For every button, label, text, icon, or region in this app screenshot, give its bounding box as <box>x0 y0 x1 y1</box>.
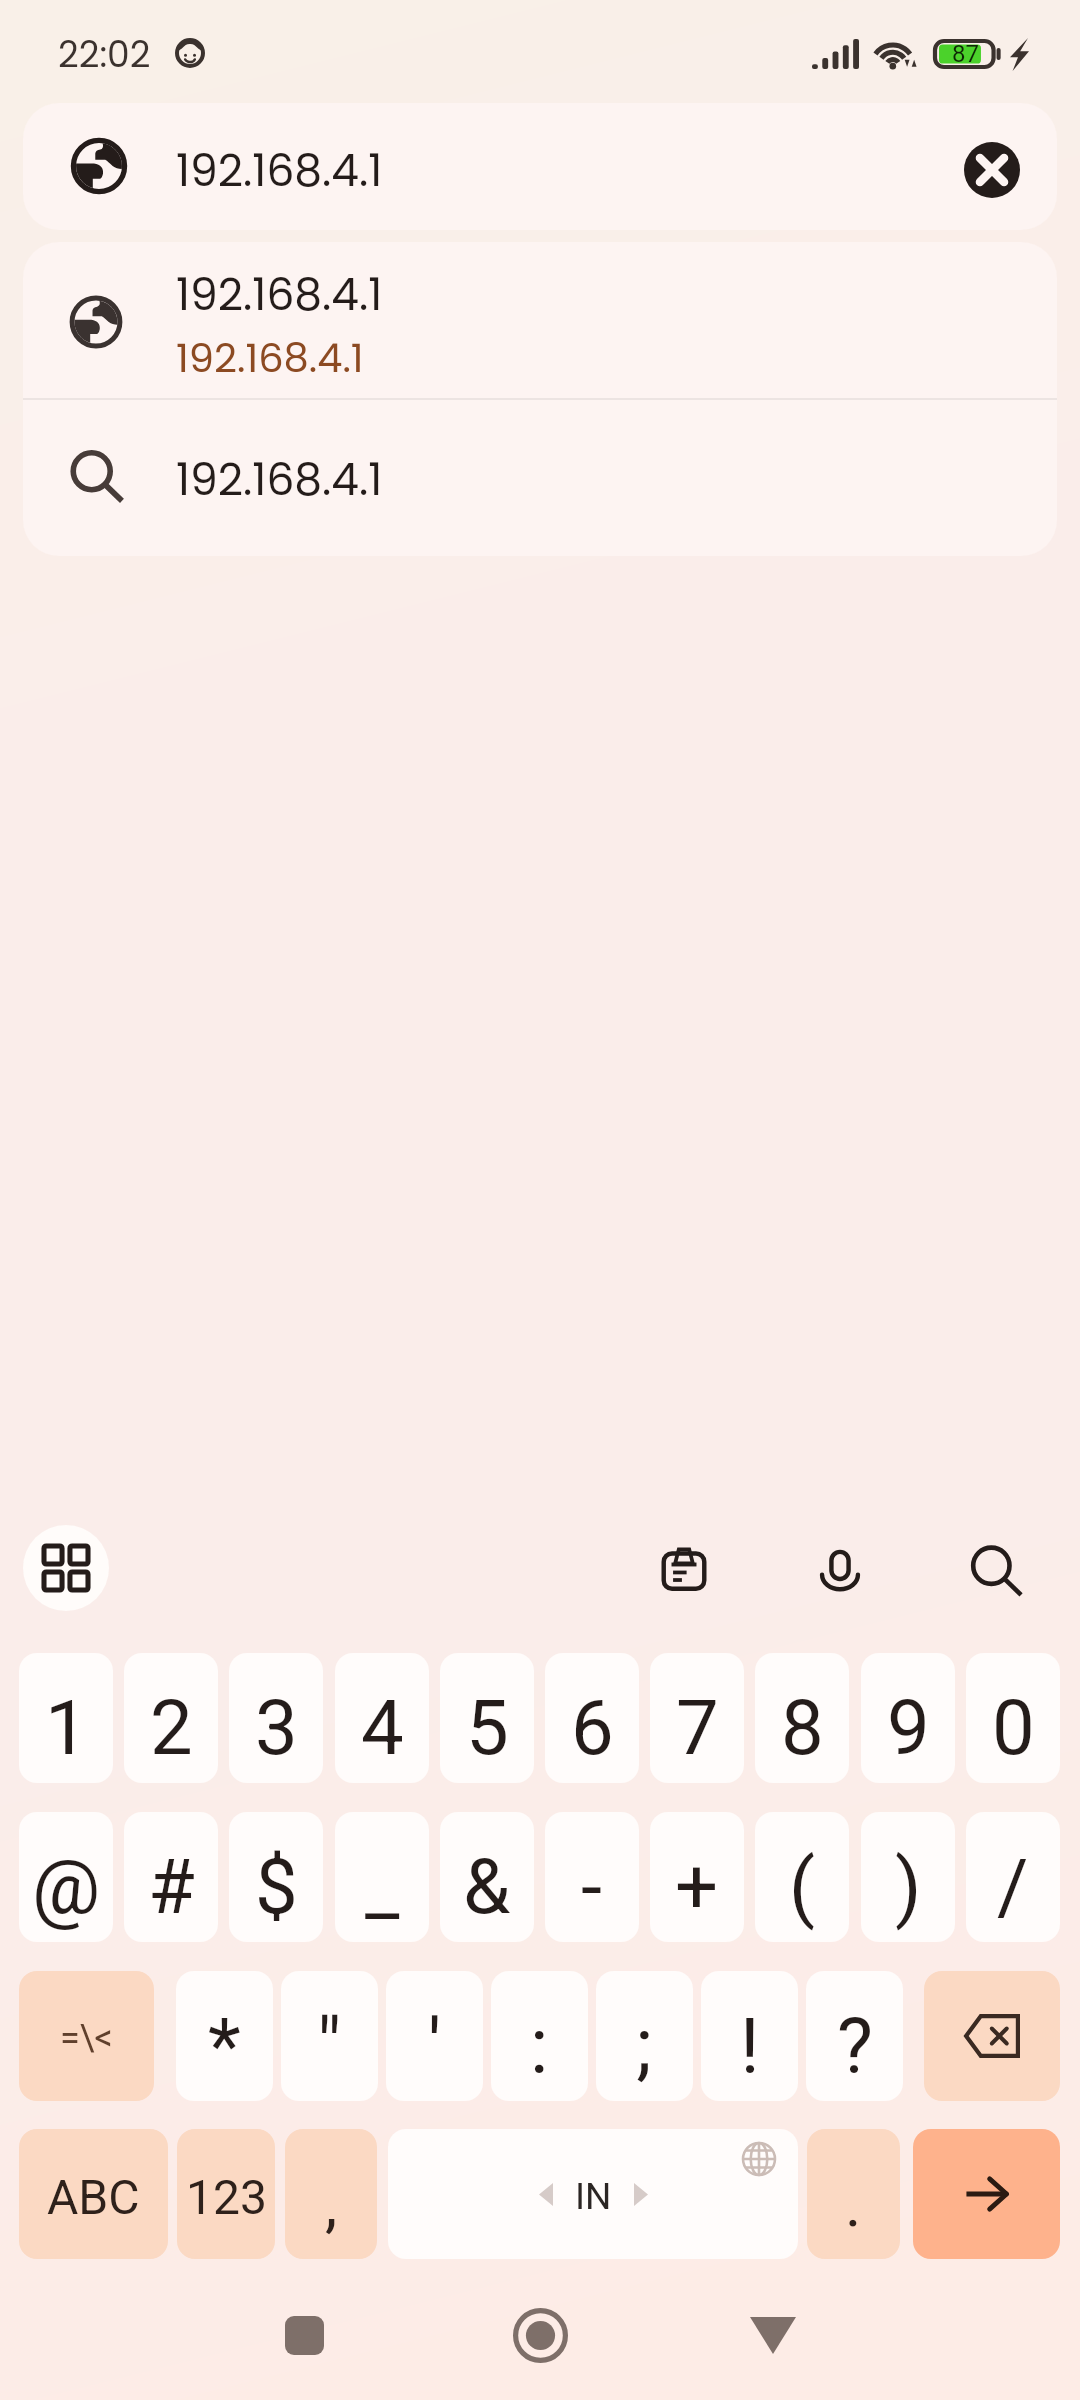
staticText: 192.168.4.1 <box>176 330 364 386</box>
staticText: 192.168.4.1 <box>176 264 383 326</box>
button[interactable]: " <box>281 1971 378 2101</box>
staticText: # <box>148 1842 195 1931</box>
button[interactable]: & <box>440 1812 534 1942</box>
staticText: ; <box>636 2001 653 2090</box>
staticText: ' <box>428 2001 442 2090</box>
staticText: 4 <box>361 1683 404 1772</box>
button[interactable]: 7 <box>650 1653 744 1783</box>
staticText: ( <box>789 1842 816 1931</box>
button[interactable]: ( <box>755 1812 849 1942</box>
staticText: @ <box>32 1842 101 1931</box>
staticText: + <box>675 1842 719 1931</box>
button[interactable]: 0 <box>966 1653 1060 1783</box>
staticText: 9 <box>887 1683 930 1772</box>
button[interactable]: - <box>545 1812 639 1942</box>
staticText: ! <box>740 2001 760 2090</box>
button[interactable]: 123 <box>177 2129 275 2259</box>
staticText: - <box>581 1842 603 1931</box>
button[interactable]: ' <box>386 1971 483 2101</box>
button[interactable]: : <box>491 1971 588 2101</box>
staticText: IN <box>575 2175 612 2218</box>
button[interactable]: Clipboard <box>636 1520 732 1616</box>
staticText: 123 <box>186 2169 267 2225</box>
staticText: 192.168.4.1 <box>176 449 383 511</box>
staticText: _ <box>365 1842 400 1931</box>
staticText: & <box>463 1842 511 1931</box>
button[interactable]: Clear <box>964 142 1020 198</box>
button[interactable]: enter <box>913 2129 1060 2259</box>
button[interactable]: $ <box>229 1812 323 1942</box>
button[interactable]: ! <box>701 1971 798 2101</box>
button[interactable]: 192.168.4.1 <box>23 103 1057 230</box>
button[interactable]: + <box>650 1812 744 1942</box>
button[interactable]: 4 <box>335 1653 429 1783</box>
staticText: 5 <box>466 1683 509 1772</box>
staticText: 2 <box>150 1683 193 1772</box>
staticText: 192.168.4.1 <box>176 140 383 202</box>
button[interactable]: / <box>966 1812 1060 1942</box>
button[interactable]: ; <box>596 1971 693 2101</box>
button[interactable]: _ <box>335 1812 429 1942</box>
button[interactable]: 1 <box>19 1653 113 1783</box>
button[interactable]: 3 <box>229 1653 323 1783</box>
button[interactable]: Voice input <box>792 1520 888 1616</box>
button[interactable]: , <box>285 2129 377 2259</box>
button[interactable]: 8 <box>755 1653 849 1783</box>
button[interactable]: ? <box>806 1971 903 2101</box>
staticText: / <box>997 1842 1029 1931</box>
staticText: $ <box>255 1842 298 1931</box>
staticText: 22:02 <box>58 29 151 79</box>
button[interactable]: Back <box>713 2275 833 2395</box>
staticText: 6 <box>571 1683 614 1772</box>
button[interactable]: 6 <box>545 1653 639 1783</box>
button[interactable]: 5 <box>440 1653 534 1783</box>
staticText: ? <box>837 2001 873 2090</box>
staticText: 7 <box>676 1683 719 1772</box>
button[interactable]: 192.168.4.1 <box>23 242 1057 398</box>
button[interactable]: Recents <box>244 2275 364 2395</box>
staticText: 87 <box>952 40 979 68</box>
button[interactable]: Home <box>480 2275 600 2395</box>
staticText: 8 <box>781 1683 824 1772</box>
staticText: " <box>317 2001 342 2090</box>
button[interactable]: ABC <box>19 2129 168 2259</box>
button[interactable]: 192.168.4.1 <box>23 399 1057 556</box>
button[interactable]: =\< <box>19 1971 154 2101</box>
button[interactable]: ) <box>861 1812 955 1942</box>
button[interactable]: 9 <box>861 1653 955 1783</box>
button[interactable]: space <box>388 2129 798 2259</box>
staticText: 0 <box>992 1683 1035 1772</box>
button[interactable]: Search <box>948 1520 1044 1616</box>
staticText: 1 <box>45 1683 88 1772</box>
staticText: =\< <box>60 2017 113 2059</box>
staticText: : <box>530 2001 549 2090</box>
button[interactable]: # <box>124 1812 218 1942</box>
button[interactable]: backspace <box>924 1971 1060 2101</box>
staticText: ABC <box>47 2169 140 2225</box>
staticText: . <box>845 2168 862 2241</box>
button[interactable]: . <box>807 2129 900 2259</box>
button[interactable]: @ <box>19 1812 113 1942</box>
button[interactable]: * <box>176 1971 273 2101</box>
staticText: * <box>208 2001 241 2090</box>
button[interactable]: Keyboard layouts <box>23 1525 109 1611</box>
staticText: 3 <box>255 1683 298 1772</box>
staticText: ) <box>895 1842 922 1931</box>
button[interactable]: 2 <box>124 1653 218 1783</box>
staticText: , <box>325 2168 338 2241</box>
